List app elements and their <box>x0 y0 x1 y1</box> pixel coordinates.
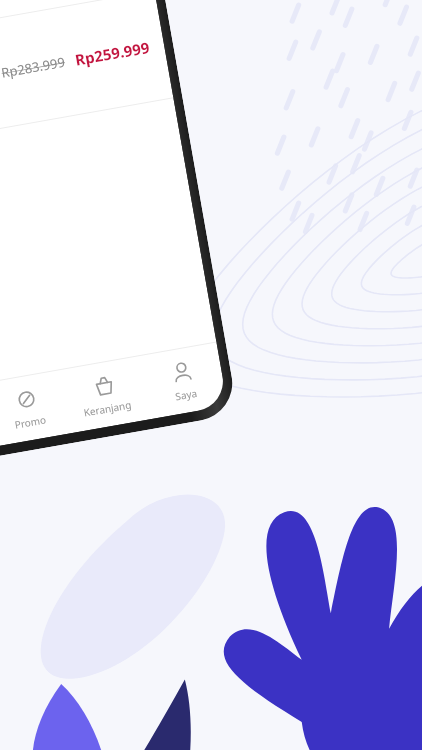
staticText: Saya <box>174 386 198 403</box>
button[interactable]: + Keranjang <box>0 0 154 44</box>
staticText: Promo <box>13 412 47 432</box>
staticText: Rp259.999 <box>74 37 152 70</box>
button[interactable]: Keranjang <box>61 356 150 433</box>
staticText: Keranjang <box>82 397 133 420</box>
button[interactable]: + Keranjang <box>0 0 173 152</box>
staticText: Rp283.999 <box>0 53 67 82</box>
button[interactable]: Promo <box>0 370 72 447</box>
button[interactable]: Saya <box>139 342 228 419</box>
